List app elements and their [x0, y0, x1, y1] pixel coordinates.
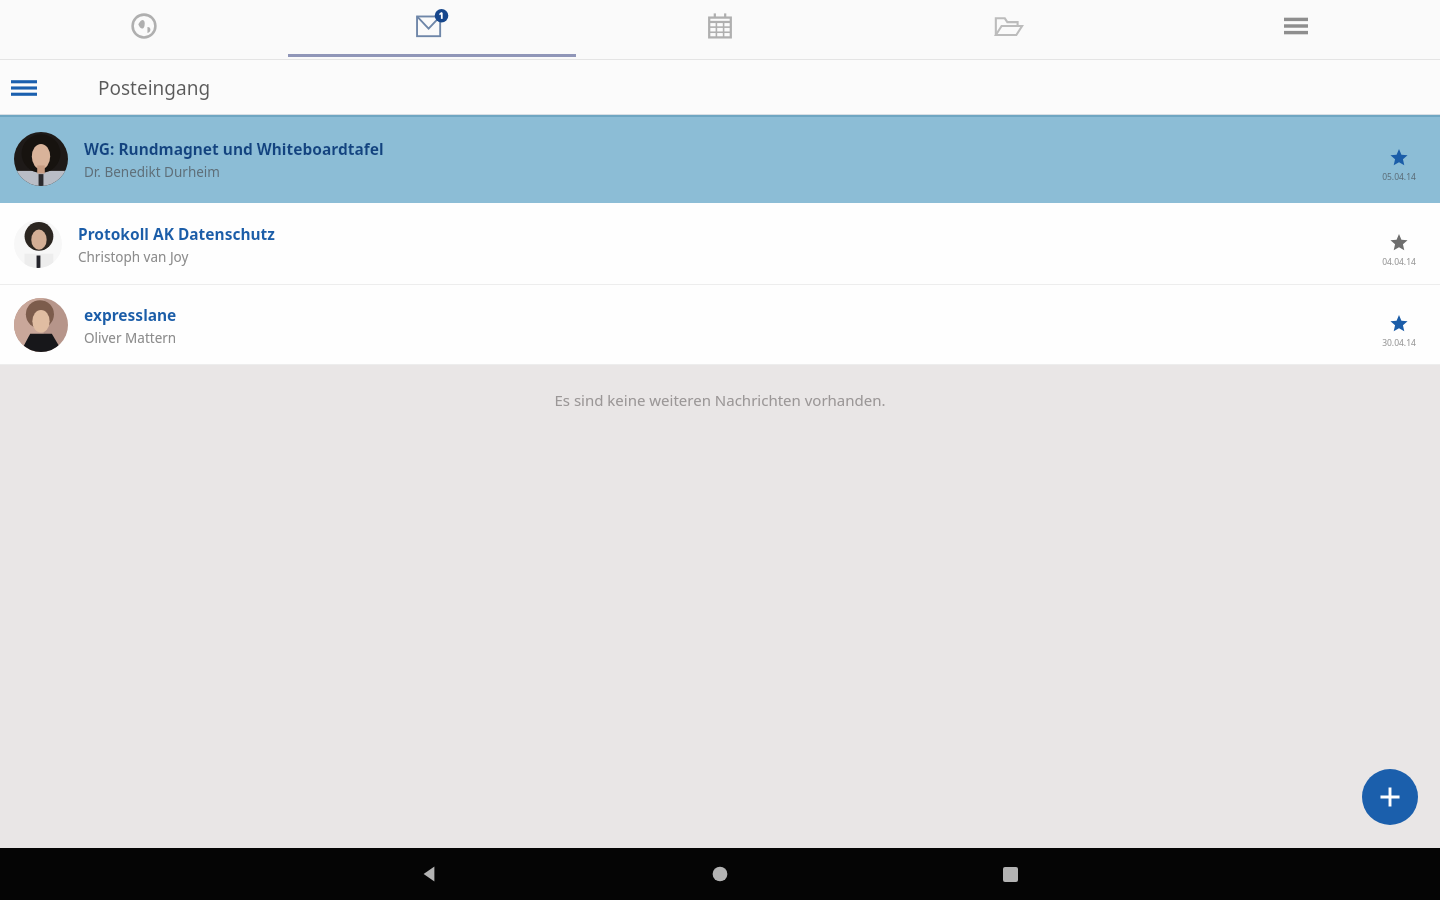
staticText: Protokoll AK Datenschutz	[78, 223, 275, 244]
button[interactable]: Zurück	[285, 848, 575, 900]
button[interactable]: Menü	[1152, 0, 1440, 60]
staticText: expresslane	[84, 304, 177, 325]
button[interactable]: E-Mail	[288, 0, 576, 60]
staticText: Es sind keine weiteren Nachrichten vorha…	[0, 390, 1440, 410]
staticText: Dr. Benedikt Durheim	[84, 163, 220, 181]
staticText: Oliver Mattern	[84, 329, 177, 347]
button[interactable]: Markieren	[1388, 147, 1410, 169]
button[interactable]: Startbildschirm	[575, 848, 865, 900]
button[interactable]: Neue Nachricht	[1362, 769, 1418, 825]
staticText: Christoph van Joy	[78, 248, 189, 266]
button[interactable]: Übersicht	[865, 848, 1155, 900]
staticText: 05.04.14	[1370, 171, 1428, 183]
button[interactable]: Markieren	[1388, 313, 1410, 335]
button[interactable]: Navigation öffnen	[4, 68, 44, 108]
staticText: 30.04.14	[1370, 337, 1428, 349]
button[interactable]: Web	[0, 0, 288, 60]
button[interactable]: Markieren	[1388, 232, 1410, 254]
button[interactable]: Kalender	[576, 0, 864, 60]
staticText: WG: Rundmagnet und Whiteboardtafel	[84, 138, 384, 159]
button[interactable]: WG: Rundmagnet und Whiteboardtafel	[0, 115, 1440, 203]
staticText: Posteingang	[98, 75, 211, 101]
button[interactable]: Protokoll AK Datenschutz	[0, 203, 1440, 285]
button[interactable]: Ordner	[864, 0, 1152, 60]
button[interactable]: expresslane	[0, 285, 1440, 365]
staticText: 04.04.14	[1370, 256, 1428, 268]
